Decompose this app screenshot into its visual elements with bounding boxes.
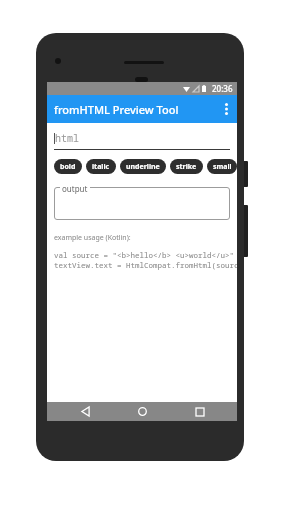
staticText: bold: [60, 162, 76, 172]
button[interactable]: bold: [54, 159, 82, 174]
staticText: strike: [176, 162, 197, 172]
button[interactable]: Recents: [180, 402, 220, 421]
staticText: small: [213, 162, 231, 172]
staticText: 20:36: [212, 83, 233, 94]
button[interactable]: Home: [122, 402, 162, 421]
button[interactable]: underline: [120, 159, 166, 174]
button[interactable]: More options: [215, 98, 237, 120]
button[interactable]: small: [207, 159, 237, 174]
staticText: output: [62, 183, 88, 194]
staticText: underline: [126, 162, 160, 172]
button[interactable]: strike: [170, 159, 203, 174]
button[interactable]: italic: [86, 159, 116, 174]
button[interactable]: [54, 187, 230, 220]
staticText: html: [55, 131, 79, 145]
staticText: example usage (Kotlin):: [54, 233, 131, 243]
staticText: fromHTML Preview Tool: [54, 102, 179, 117]
staticText: italic: [92, 162, 110, 172]
button[interactable]: Back: [65, 402, 105, 421]
button[interactable]: html: [54, 131, 230, 150]
staticText: textView.text = HtmlCompat.fromHtml(sour…: [54, 260, 237, 270]
staticText: val source = "<b>hello</b> <u>world</u>": [54, 250, 234, 260]
